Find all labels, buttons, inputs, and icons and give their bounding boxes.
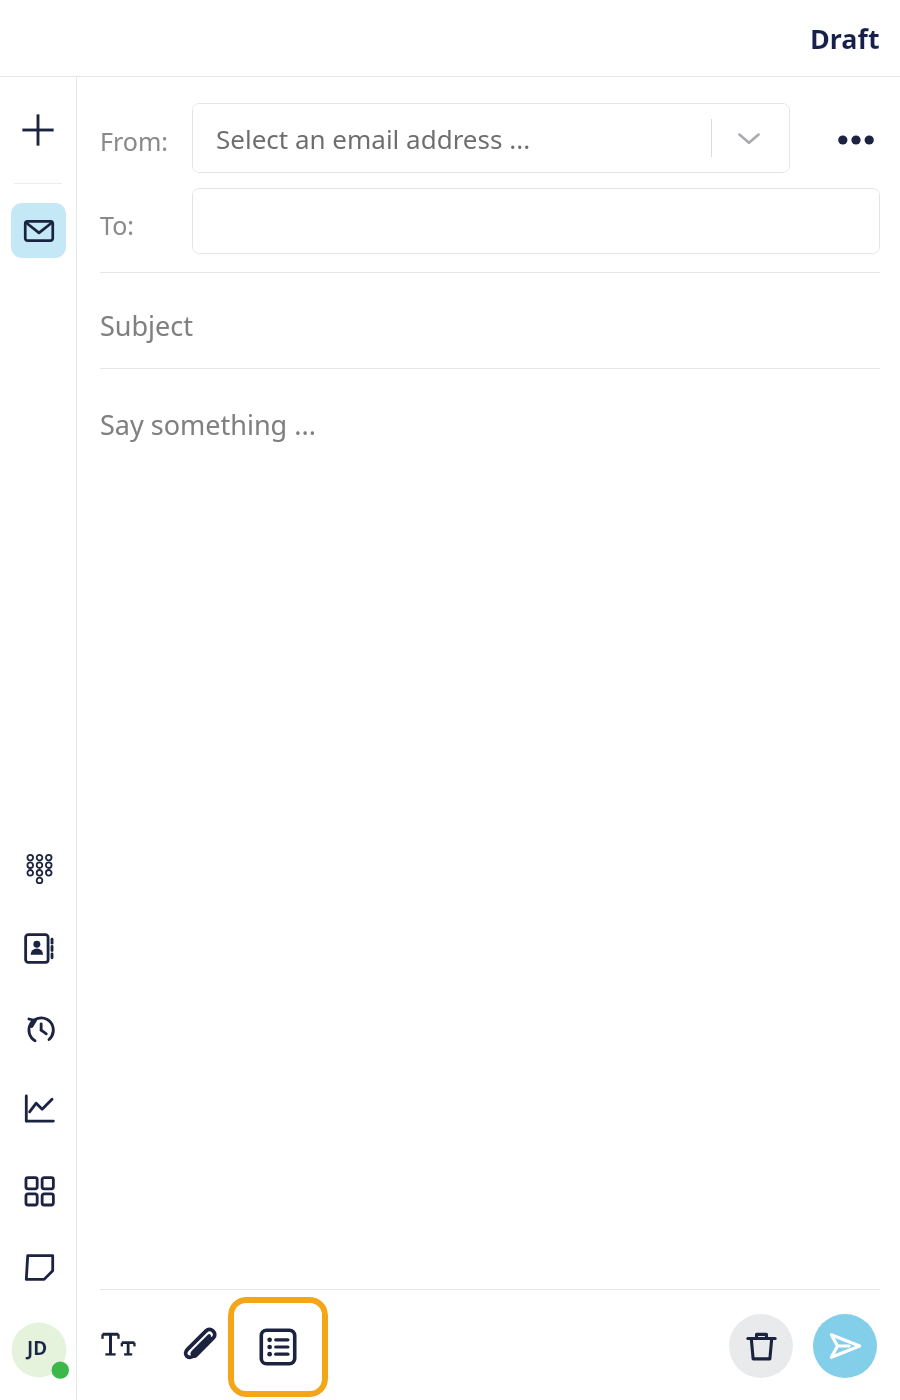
staticText: To: (100, 208, 134, 242)
button[interactable]: More options (826, 110, 886, 170)
button[interactable]: Say something ... (100, 378, 880, 1278)
button[interactable]: Select an email address ... (192, 103, 790, 173)
button[interactable]: To recipients (192, 188, 880, 254)
staticText: Subject (100, 307, 194, 344)
button[interactable]: Delete draft (729, 1314, 793, 1378)
button[interactable]: Subject (100, 282, 880, 368)
staticText: Say something ... (100, 406, 316, 443)
button[interactable]: Attach file (171, 1317, 229, 1375)
button[interactable]: Notes (11, 1239, 67, 1295)
button[interactable]: Contacts (11, 920, 67, 976)
button[interactable]: Text formatting (92, 1317, 150, 1375)
button[interactable]: JD (11, 1322, 67, 1378)
button[interactable]: Apps (11, 1161, 67, 1217)
button[interactable]: Mail (11, 203, 66, 258)
button[interactable]: Analytics (11, 1080, 67, 1136)
button[interactable]: Send (813, 1314, 877, 1378)
button[interactable]: Templates (228, 1297, 328, 1397)
button[interactable]: History (11, 1000, 67, 1056)
button[interactable]: New (10, 102, 66, 158)
staticText: JD (27, 1335, 48, 1361)
button[interactable]: Dialpad (11, 840, 67, 896)
staticText: From: (100, 124, 169, 158)
staticText: Select an email address ... (216, 121, 531, 156)
staticText: Draft (810, 20, 880, 57)
